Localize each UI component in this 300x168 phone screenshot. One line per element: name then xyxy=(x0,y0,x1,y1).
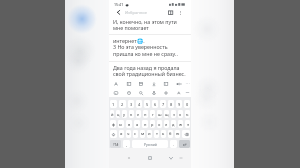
button[interactable]: More options xyxy=(178,10,183,15)
button[interactable]: Back xyxy=(115,9,122,16)
button[interactable]: More xyxy=(185,81,190,86)
staticText: с xyxy=(134,131,137,137)
staticText: 6 xyxy=(154,102,157,107)
button[interactable]: Expand xyxy=(185,90,190,95)
button[interactable]: ы xyxy=(118,120,124,128)
staticText: я xyxy=(120,131,123,137)
button[interactable]: Enter xyxy=(179,140,190,148)
staticText: у xyxy=(123,112,126,117)
button[interactable]: ж xyxy=(178,120,183,128)
button[interactable]: Keyboard tool 6 xyxy=(176,90,182,96)
button[interactable]: в xyxy=(126,120,132,128)
button[interactable]: д xyxy=(171,120,176,128)
button[interactable]: Format tool 5 xyxy=(163,81,169,87)
button[interactable]: Format tool 1 xyxy=(113,81,119,87)
button[interactable]: 5 xyxy=(144,100,150,108)
staticText: 8 xyxy=(170,102,173,107)
button[interactable]: ф xyxy=(110,120,116,128)
button[interactable]: ш xyxy=(157,110,162,118)
button[interactable]: с xyxy=(133,130,138,138)
staticText: р xyxy=(151,122,154,127)
staticText: , xyxy=(126,142,128,147)
button[interactable]: Format tool 4 xyxy=(151,81,157,87)
button[interactable]: Notes xyxy=(168,10,173,15)
staticText: х xyxy=(179,112,182,117)
button[interactable]: к xyxy=(129,110,134,118)
staticText: интернет🌐. 3 Но эта уверенность пришла к… xyxy=(113,37,178,58)
button[interactable]: Format tool 2 xyxy=(126,81,132,87)
staticText: б xyxy=(169,131,172,137)
button[interactable]: л xyxy=(164,120,169,128)
button[interactable]: о xyxy=(157,120,162,128)
button[interactable]: . xyxy=(170,140,177,148)
button[interactable]: Format tool 3 xyxy=(138,81,144,87)
button[interactable]: 8 xyxy=(168,100,174,108)
staticText: щ xyxy=(165,112,169,117)
button[interactable]: ч xyxy=(126,130,131,138)
staticText: и xyxy=(148,131,151,137)
staticText: ы xyxy=(119,122,123,127)
button[interactable]: Keyboard tool 1 xyxy=(113,90,119,96)
button[interactable]: Format tool 6 xyxy=(176,81,182,87)
button[interactable]: х xyxy=(178,110,183,118)
button[interactable]: й xyxy=(110,110,114,118)
button[interactable]: з xyxy=(171,110,176,118)
button[interactable]: Keyboard tool 4 xyxy=(151,90,157,96)
button[interactable]: щ xyxy=(164,110,169,118)
button[interactable]: б xyxy=(168,130,173,138)
button[interactable]: 6 xyxy=(152,100,158,108)
staticText: 1 xyxy=(112,102,115,107)
button[interactable]: Keyboard tool 2 xyxy=(126,90,132,96)
staticText: ю xyxy=(176,131,180,137)
staticText: э xyxy=(187,122,189,127)
button[interactable]: 9 xyxy=(176,100,182,108)
button[interactable]: м xyxy=(140,130,145,138)
button[interactable]: Hide keyboard xyxy=(178,155,184,161)
staticText: 2 xyxy=(121,102,124,107)
staticText: в xyxy=(128,122,131,127)
staticText: ф xyxy=(112,122,115,127)
staticText: 0 xyxy=(186,102,189,107)
staticText: Русский xyxy=(144,142,157,146)
button[interactable]: а xyxy=(134,120,140,128)
button[interactable]: Home xyxy=(147,155,153,161)
button[interactable]: у xyxy=(122,110,127,118)
button[interactable]: Recents xyxy=(126,155,132,161)
button[interactable]: Keyboard tool 3 xyxy=(138,90,144,96)
button[interactable]: ь xyxy=(161,130,166,138)
button[interactable]: 4 xyxy=(136,100,142,108)
staticText: 5 xyxy=(146,102,149,107)
staticText: ч xyxy=(127,131,130,137)
button[interactable]: р xyxy=(150,120,155,128)
button[interactable]: Backspace xyxy=(182,130,190,138)
button[interactable]: ?1# xyxy=(110,140,121,148)
button[interactable]: ю xyxy=(175,130,180,138)
button[interactable]: ъ xyxy=(185,110,190,118)
staticText: п xyxy=(144,122,147,127)
button[interactable]: н xyxy=(143,110,148,118)
button[interactable]: я xyxy=(119,130,124,138)
button[interactable]: е xyxy=(136,110,141,118)
button[interactable]: э xyxy=(185,120,190,128)
staticText: 3 xyxy=(130,102,133,107)
button[interactable]: , xyxy=(123,140,130,148)
button[interactable]: Русский xyxy=(132,140,168,148)
staticText: о xyxy=(158,122,161,127)
button[interactable]: 2 xyxy=(119,100,126,108)
staticText: м xyxy=(141,131,145,137)
button[interactable]: Keyboard tool 5 xyxy=(163,90,169,96)
button[interactable]: Shift xyxy=(110,130,117,138)
button[interactable]: и xyxy=(147,130,152,138)
button[interactable]: Back xyxy=(168,155,174,161)
staticText: н xyxy=(144,112,147,117)
staticText: ж xyxy=(179,122,183,127)
button[interactable]: 3 xyxy=(128,100,134,108)
button[interactable]: 7 xyxy=(160,100,166,108)
button[interactable]: 0 xyxy=(184,100,190,108)
staticText: й xyxy=(111,112,114,117)
button[interactable]: т xyxy=(154,130,159,138)
button[interactable]: ц xyxy=(116,110,120,118)
button[interactable]: п xyxy=(142,120,148,128)
button[interactable]: г xyxy=(150,110,155,118)
button[interactable]: 1 xyxy=(110,100,117,108)
